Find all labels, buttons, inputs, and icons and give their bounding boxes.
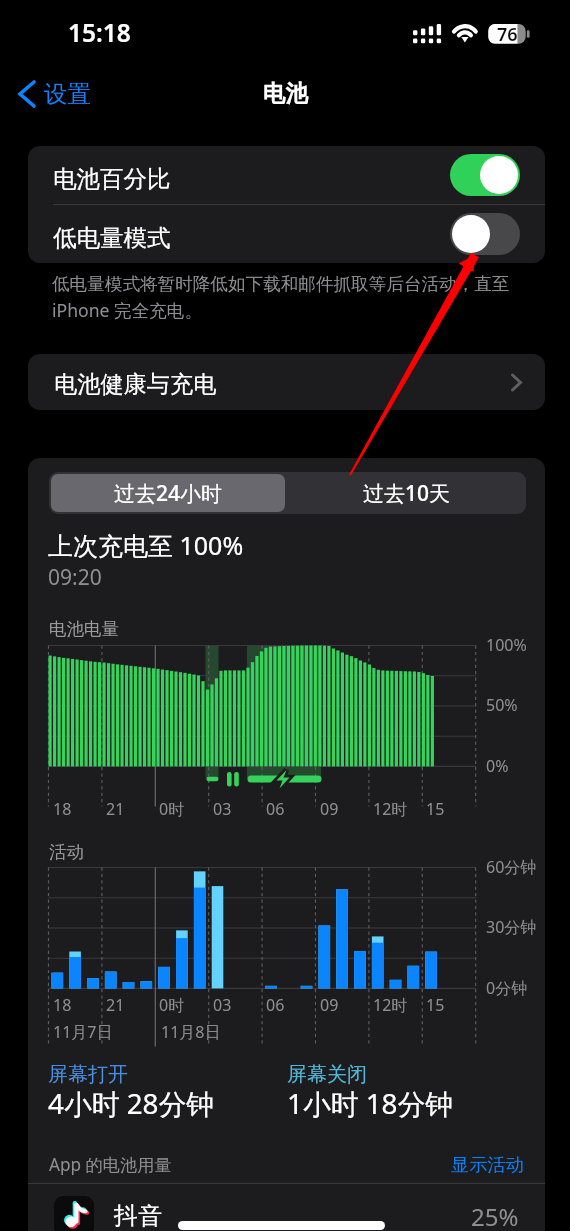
button[interactable]: 过去10天 [287,472,526,514]
staticText: 06 [266,798,285,820]
staticText: 0% [486,755,509,777]
staticText: 60分钟 [486,856,537,878]
staticText: 18 [53,798,72,820]
staticText: 21 [106,798,125,820]
staticText: 显示活动 [451,1153,524,1176]
staticText: 06 [266,994,285,1016]
staticText: 12时 [373,994,408,1016]
staticText: 25% [471,1200,519,1231]
staticText: 屏幕关闭 [287,1062,367,1087]
button[interactable]: 低电量模式 [450,213,520,255]
staticText: 抖音 [114,1201,162,1231]
staticText: 12时 [373,798,408,820]
button[interactable]: 电池健康与充电 [28,354,545,410]
staticText: 09:20 [48,563,102,592]
staticText: 03 [213,798,232,820]
staticText: 0时 [159,798,185,820]
button[interactable]: 电池百分比 [28,146,545,204]
staticText: 上次充电至 100% [48,528,244,562]
staticText: 屏幕打开 [48,1062,128,1087]
staticText: 76 [497,22,518,47]
staticText: 09 [320,798,339,820]
staticText: 100% [486,634,527,656]
staticText: 09 [320,994,339,1016]
staticText: 18 [53,994,72,1016]
staticText: 11月8日 [161,1021,221,1043]
staticText: 过去10天 [363,479,451,508]
staticText: 15:18 [68,16,131,49]
staticText: 0时 [159,994,185,1016]
button[interactable]: 电池百分比 [450,154,520,196]
staticText: App 的电池用量 [49,1153,172,1176]
staticText: 低电量模式 [53,223,171,253]
staticText: 低电量模式将暂时降低如下载和邮件抓取等后台活动，直至 [52,273,510,295]
staticText: 4小时 28分钟 [48,1084,215,1122]
staticText: 50% [486,694,518,716]
staticText: 21 [106,994,125,1016]
staticText: 15 [426,994,445,1016]
staticText: 电池健康与充电 [54,370,217,399]
staticText: 活动 [49,841,84,863]
staticText: 0分钟 [486,977,528,999]
staticText: 电池 [263,79,308,107]
staticText: 电池电量 [49,618,119,640]
button[interactable]: 抖音 [28,1186,545,1231]
button[interactable]: 过去24小时 [51,474,285,512]
staticText: 03 [213,994,232,1016]
staticText: 30分钟 [486,916,537,938]
staticText: iPhone 完全充电。 [52,298,203,322]
staticText: 电池百分比 [53,164,171,194]
button[interactable]: 显示活动 [451,1153,524,1176]
staticText: 11月7日 [53,1021,113,1043]
button[interactable]: 设置 [12,74,91,114]
button[interactable]: 低电量模式 [28,205,545,263]
staticText: 过去24小时 [114,479,223,508]
staticText: 1小时 18分钟 [287,1084,454,1122]
staticText: 设置 [44,79,91,109]
staticText: 15 [426,798,445,820]
